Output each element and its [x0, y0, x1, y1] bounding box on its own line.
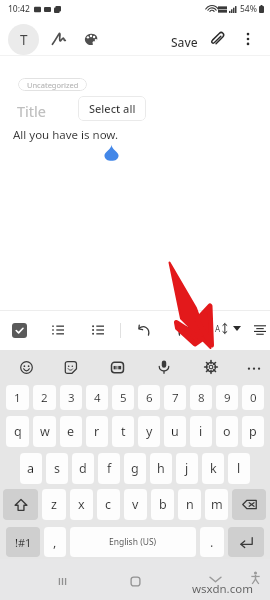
staticText: k [210, 460, 217, 477]
button[interactable]: Bulleted list [90, 322, 106, 338]
staticText: v [132, 496, 139, 513]
button[interactable]: a [20, 453, 42, 484]
staticText: English (US) [109, 536, 157, 548]
staticText: c [105, 496, 112, 513]
staticText: 9 [224, 390, 231, 406]
staticText: j [185, 460, 189, 477]
button[interactable]: Handwriting [47, 27, 71, 51]
staticText: p [249, 423, 257, 440]
button[interactable]: 8 [190, 385, 212, 410]
button[interactable]: Back [197, 561, 233, 597]
staticText: f [107, 460, 112, 477]
button[interactable]: j [176, 453, 198, 484]
button[interactable]: l [228, 453, 250, 484]
button[interactable]: Voice input [151, 354, 177, 380]
button[interactable]: m [205, 489, 228, 520]
button[interactable]: g [124, 453, 146, 484]
staticText: d [79, 460, 87, 477]
staticText: !#1 [15, 535, 32, 550]
button[interactable]: n [178, 489, 201, 520]
staticText: i [199, 423, 203, 440]
button[interactable]: Undo [135, 321, 153, 339]
staticText: A [215, 323, 221, 334]
button[interactable]: y [138, 416, 160, 447]
button[interactable]: Redo [175, 321, 193, 339]
staticText: Title [17, 101, 46, 121]
button[interactable]: 5 [112, 385, 134, 410]
button[interactable]: . [200, 527, 224, 557]
button[interactable]: f [98, 453, 120, 484]
button[interactable]: Recents [44, 563, 80, 599]
button[interactable]: 6 [138, 385, 160, 410]
staticText: . [210, 534, 214, 551]
button[interactable]: Save [167, 30, 202, 54]
staticText: wsxdn.com [192, 581, 253, 597]
button[interactable]: 3 [60, 385, 82, 410]
button[interactable]: o [216, 416, 238, 447]
button[interactable]: Text size [215, 323, 241, 334]
button[interactable]: More [241, 354, 267, 380]
button[interactable]: b [151, 489, 174, 520]
button[interactable]: t [112, 416, 134, 447]
button[interactable]: Home [117, 563, 153, 599]
staticText: r [94, 423, 100, 440]
button[interactable]: q [6, 416, 29, 447]
staticText: o [223, 423, 231, 440]
button[interactable]: Uncategorized [18, 78, 87, 91]
staticText: 5 [120, 390, 127, 406]
button[interactable]: Backspace [232, 489, 266, 520]
button[interactable]: , [44, 527, 66, 557]
staticText: n [186, 496, 194, 513]
staticText: T [20, 31, 28, 49]
button[interactable]: Alignment [252, 322, 268, 338]
button[interactable]: Palette [79, 27, 103, 51]
staticText: t [121, 423, 126, 440]
staticText: u [171, 423, 179, 440]
button[interactable]: h [150, 453, 172, 484]
button[interactable]: i [190, 416, 212, 447]
button[interactable]: d [72, 453, 94, 484]
staticText: y [146, 423, 153, 440]
staticText: 1 [14, 390, 21, 406]
button[interactable]: !#1 [6, 527, 40, 557]
button[interactable]: English (US) [70, 527, 196, 557]
button[interactable]: GIF [104, 354, 130, 380]
button[interactable]: 9 [216, 385, 238, 410]
button[interactable]: Keyboard settings [198, 354, 224, 380]
button[interactable]: e [60, 416, 82, 447]
button[interactable]: k [202, 453, 224, 484]
staticText: a [27, 460, 35, 477]
button[interactable]: Numbered list [50, 322, 66, 338]
button[interactable]: Enter [228, 527, 264, 557]
button[interactable]: Select all [78, 96, 146, 121]
button[interactable]: w [33, 416, 56, 447]
button[interactable]: 4 [86, 385, 108, 410]
staticText: h [157, 460, 165, 477]
button[interactable]: 7 [164, 385, 186, 410]
button[interactable]: Checklist [12, 323, 27, 338]
button[interactable]: 2 [33, 385, 56, 410]
button[interactable]: More options [237, 28, 259, 50]
staticText: z [51, 496, 57, 513]
button[interactable]: Text mode [8, 24, 39, 55]
button[interactable]: s [46, 453, 68, 484]
staticText: Uncategorized [27, 80, 79, 90]
staticText: q [14, 423, 22, 440]
staticText: m [211, 496, 223, 513]
button[interactable]: Attach [205, 27, 229, 51]
button[interactable]: Shift [3, 489, 38, 520]
staticText: w [40, 423, 50, 440]
button[interactable]: p [242, 416, 264, 447]
button[interactable]: z [42, 489, 66, 520]
button[interactable]: r [86, 416, 108, 447]
button[interactable]: 0 [242, 385, 264, 410]
button[interactable]: Emoji [13, 354, 39, 380]
button[interactable]: u [164, 416, 186, 447]
staticText: 4 [94, 390, 101, 406]
staticText: Select all [89, 101, 136, 116]
button[interactable]: x [70, 489, 93, 520]
button[interactable]: 1 [6, 385, 29, 410]
button[interactable]: v [124, 489, 147, 520]
button[interactable]: c [97, 489, 120, 520]
button[interactable]: Stickers [57, 354, 83, 380]
